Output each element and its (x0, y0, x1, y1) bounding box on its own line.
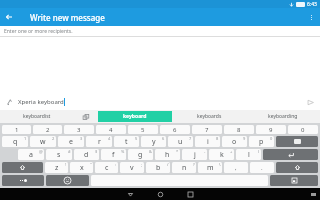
button[interactable]: s (46, 149, 72, 160)
staticText: 3 (80, 136, 83, 141)
staticText: w (40, 137, 46, 147)
button[interactable]: 3 (64, 125, 94, 134)
button[interactable]: 0 (288, 125, 318, 134)
button[interactable]: v (120, 162, 144, 173)
staticText: d (84, 150, 89, 160)
button[interactable]: Enter (263, 149, 318, 160)
staticText: k (220, 150, 224, 160)
button[interactable]: 7 (192, 125, 222, 134)
button[interactable]: Attach (4, 97, 14, 107)
button[interactable]: keyboards (172, 110, 246, 123)
button[interactable]: Emoji (46, 175, 89, 186)
staticText: ? (193, 162, 195, 167)
button[interactable]: keyboardist (0, 110, 74, 123)
staticText: ( (258, 149, 260, 154)
button[interactable]: . (250, 162, 274, 173)
staticText: v (130, 163, 134, 173)
button[interactable]: p (249, 136, 274, 147)
staticText: a (29, 150, 33, 160)
staticText: 0 (270, 136, 273, 141)
button[interactable]: d (74, 149, 99, 160)
staticText: 2 (52, 136, 55, 141)
button[interactable]: t (114, 136, 139, 147)
button[interactable]: q (2, 136, 28, 147)
button[interactable]: l (236, 149, 261, 160)
button[interactable]: u (168, 136, 193, 147)
button[interactable]: 1 (2, 125, 31, 134)
button[interactable]: Home (153, 188, 167, 200)
staticText: keyboards (197, 113, 222, 120)
button[interactable]: 4 (96, 125, 126, 134)
staticText: q (13, 137, 18, 147)
button[interactable]: keyboard (98, 111, 172, 122)
button[interactable]: k (209, 149, 234, 160)
staticText: n (182, 163, 187, 173)
staticText: Enter one or more recipients. (4, 28, 73, 35)
staticText: \ (219, 162, 221, 167)
staticText: @ (39, 149, 43, 154)
staticText: 4 (109, 126, 113, 134)
staticText: " (90, 162, 92, 167)
button[interactable]: o (222, 136, 247, 147)
button[interactable]: Symbols (2, 175, 44, 186)
button[interactable]: i (195, 136, 220, 147)
button[interactable]: e (58, 136, 84, 147)
button[interactable]: Send (304, 96, 316, 108)
staticText: o (232, 137, 237, 147)
button[interactable]: keyboarding (246, 110, 320, 123)
staticText: x (80, 163, 84, 173)
button[interactable]: b (146, 162, 170, 173)
staticText: 4 (108, 136, 111, 141)
button[interactable]: c (95, 162, 118, 173)
staticText: g (138, 150, 143, 160)
button[interactable]: Recents (183, 188, 197, 200)
staticText: 1 (24, 136, 27, 141)
button[interactable]: g (128, 149, 153, 160)
staticText: 1 (15, 126, 19, 134)
button[interactable]: r (86, 136, 112, 147)
button[interactable]: More options (302, 8, 320, 26)
staticText: % (121, 149, 125, 154)
staticText: ! (65, 162, 67, 167)
button[interactable]: w (30, 136, 56, 147)
staticText: j (194, 150, 196, 160)
button[interactable]: 6 (160, 125, 190, 134)
button[interactable]: , (224, 162, 248, 173)
staticText: . (261, 164, 263, 172)
button[interactable]: 9 (256, 125, 286, 134)
button[interactable]: m (198, 162, 222, 173)
button[interactable]: n (172, 162, 196, 173)
button[interactable]: Clipboard (74, 110, 98, 123)
staticText: 6 (173, 126, 177, 134)
button[interactable]: 8 (224, 125, 254, 134)
button[interactable]: 2 (33, 125, 62, 134)
button[interactable]: z (45, 162, 68, 173)
button[interactable]: Keyboard indicator (310, 191, 316, 197)
staticText: y (152, 137, 156, 147)
staticText: keyboard (123, 113, 147, 120)
staticText: - (204, 149, 206, 154)
staticText: i (207, 137, 209, 147)
staticText: u (178, 137, 183, 147)
button[interactable]: Backspace (276, 136, 318, 147)
staticText: m (207, 163, 214, 173)
staticText: r (98, 137, 101, 147)
staticText: 8 (216, 136, 219, 141)
button[interactable]: Back (123, 188, 137, 200)
staticText: b (156, 163, 161, 173)
staticText: z (55, 163, 59, 173)
button[interactable]: Shift (276, 162, 318, 173)
button[interactable]: y (141, 136, 166, 147)
staticText: keyboardist (23, 113, 51, 120)
button[interactable]: j (182, 149, 207, 160)
button[interactable]: Shift (2, 162, 43, 173)
staticText: 9 (243, 136, 246, 141)
button[interactable]: h (155, 149, 180, 160)
button[interactable]: 5 (128, 125, 158, 134)
button[interactable]: Back (0, 8, 18, 26)
button[interactable]: x (70, 162, 93, 173)
button[interactable]: Keyboard layout (270, 175, 318, 186)
button[interactable]: a (18, 149, 44, 160)
button[interactable]: f (101, 149, 126, 160)
